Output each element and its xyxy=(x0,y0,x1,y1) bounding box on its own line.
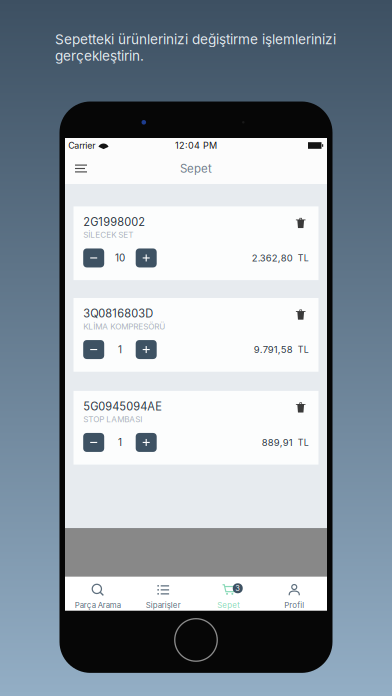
staticText: 12:04 PM xyxy=(175,140,217,151)
button[interactable]: Remove 2G1998002 xyxy=(293,217,309,234)
button[interactable]: Decrease quantity xyxy=(83,433,104,452)
staticText: 3 xyxy=(235,584,240,593)
button[interactable]: Decrease quantity xyxy=(83,340,104,359)
staticText: 889,91 xyxy=(262,437,293,448)
button[interactable]: Menu xyxy=(70,157,92,179)
staticText: Parça Arama xyxy=(75,600,121,610)
staticText: STOP LAMBASI xyxy=(83,414,142,424)
staticText: Profil xyxy=(284,600,304,610)
button[interactable]: Decrease quantity xyxy=(83,248,104,267)
staticText: 3Q0816803D xyxy=(83,307,153,320)
staticText: TL xyxy=(298,253,309,263)
button[interactable]: Siparişler xyxy=(130,578,196,609)
staticText: TL xyxy=(298,437,309,448)
staticText: Carrier xyxy=(68,140,95,151)
staticText: 1 xyxy=(118,344,122,355)
button[interactable]: 3 xyxy=(196,578,261,609)
staticText: 1 xyxy=(118,436,122,448)
staticText: 9.791,58 xyxy=(254,344,293,355)
staticText: 5G0945094AE xyxy=(83,400,162,413)
staticText: Siparişler xyxy=(146,600,181,610)
button[interactable]: Parça Arama xyxy=(65,578,130,609)
staticText: Sepet xyxy=(217,600,240,610)
staticText: Sepetteki ürünlerinizi değiştirme işleml… xyxy=(55,31,336,64)
staticText: TL xyxy=(298,344,309,355)
button[interactable]: Remove 5G0945094AE xyxy=(293,401,309,418)
button[interactable]: Profil xyxy=(261,578,327,609)
button[interactable]: Remove 3Q0816803D xyxy=(293,308,309,325)
staticText: 2G1998002 xyxy=(83,215,145,229)
button[interactable]: Increase quantity xyxy=(136,340,157,359)
button[interactable]: Increase quantity xyxy=(136,248,157,267)
staticText: Sepet xyxy=(180,162,212,175)
staticText: KLİMA KOMPRESÖRÜ xyxy=(83,322,165,331)
button[interactable]: Increase quantity xyxy=(136,433,157,452)
staticText: 10 xyxy=(115,252,125,264)
staticText: 2.362,80 xyxy=(252,252,293,264)
staticText: SİLECEK SET xyxy=(83,230,133,240)
